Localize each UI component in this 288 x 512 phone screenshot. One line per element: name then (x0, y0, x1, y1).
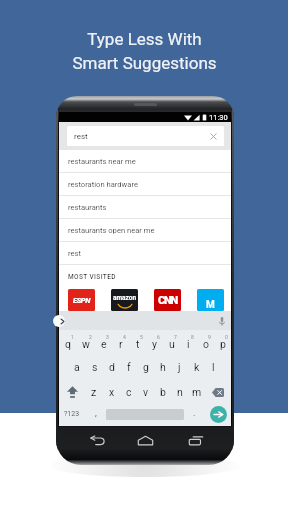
other: Clear (210, 133, 217, 140)
button[interactable]: 4 (112, 330, 129, 354)
staticText: x (109, 386, 115, 398)
button[interactable]: f (120, 354, 137, 378)
staticText: 8 (191, 334, 194, 340)
staticText: i (187, 338, 190, 350)
button[interactable]: . (184, 402, 205, 426)
button[interactable]: g (137, 354, 154, 378)
staticText: 3 (106, 334, 109, 340)
button[interactable]: s (86, 354, 103, 378)
button[interactable]: amazon (111, 289, 138, 311)
staticText: MOST VISITED (68, 273, 116, 281)
button[interactable]: Backspace (205, 378, 231, 402)
staticText: q (65, 338, 71, 350)
staticText: Type Less With (87, 29, 202, 49)
button[interactable]: M (197, 289, 224, 311)
staticText: d (109, 361, 115, 373)
button[interactable]: 0 (214, 330, 231, 354)
button[interactable]: Shift (59, 378, 85, 402)
button[interactable]: 1 (59, 330, 77, 354)
button[interactable]: Recents (186, 433, 206, 447)
staticText: j (178, 361, 181, 373)
staticText: f (127, 361, 131, 373)
staticText: r (119, 338, 123, 350)
button[interactable]: 8 (180, 330, 197, 354)
staticText: b (160, 386, 166, 398)
staticText: z (91, 386, 97, 398)
staticText: g (143, 361, 149, 373)
button[interactable]: restoration hardware (59, 173, 231, 195)
button[interactable]: n (171, 378, 188, 402)
staticText: M (206, 299, 215, 311)
staticText: s (92, 361, 98, 373)
button[interactable]: 9 (197, 330, 214, 354)
staticText: 6 (157, 334, 160, 340)
button[interactable]: d (103, 354, 120, 378)
button[interactable]: rest (67, 126, 224, 146)
button[interactable]: rest (59, 242, 231, 264)
button[interactable]: l (205, 354, 222, 378)
button[interactable]: Search (210, 406, 227, 423)
button[interactable]: Voice input (216, 315, 228, 327)
button[interactable]: CNN (154, 289, 181, 311)
button[interactable]: v (137, 378, 154, 402)
staticText: 1 (71, 334, 74, 340)
staticText: amazon (113, 294, 137, 302)
button[interactable]: x (103, 378, 120, 402)
button[interactable]: 7 (163, 330, 180, 354)
staticText: h (160, 361, 166, 373)
staticText: rest (74, 132, 88, 141)
staticText: restaurants open near me (68, 226, 155, 235)
staticText: y (152, 338, 157, 350)
staticText: a (74, 361, 80, 373)
staticText: Smart Suggestions (72, 53, 217, 73)
staticText: e (101, 338, 107, 350)
staticText: v (143, 386, 149, 398)
button[interactable]: , (85, 402, 106, 426)
staticText: u (169, 338, 175, 350)
staticText: n (177, 386, 183, 398)
button[interactable]: z (85, 378, 103, 402)
button[interactable]: h (154, 354, 171, 378)
staticText: 0 (225, 334, 228, 340)
button[interactable]: m (188, 378, 205, 402)
staticText: 2 (89, 334, 92, 340)
button[interactable]: ?123 (59, 402, 85, 426)
staticText: k (194, 361, 200, 373)
button[interactable]: ESPN (68, 289, 95, 311)
staticText: l (212, 361, 215, 373)
staticText: 5 (140, 334, 143, 340)
staticText: 7 (174, 334, 177, 340)
staticText: . (193, 408, 196, 419)
staticText: 4 (123, 334, 126, 340)
button[interactable]: 2 (77, 330, 95, 354)
button[interactable]: j (171, 354, 188, 378)
button[interactable]: restaurants (59, 196, 231, 218)
staticText: restaurants near me (68, 157, 136, 166)
staticText: t (136, 338, 140, 350)
staticText: w (82, 338, 90, 350)
staticText: , (95, 408, 97, 419)
button[interactable]: Home (135, 433, 155, 447)
button[interactable]: Expand suggestions (53, 315, 65, 327)
button[interactable]: restaurants near me (59, 150, 231, 172)
staticText: m (192, 386, 202, 398)
staticText: o (203, 338, 209, 350)
button[interactable]: b (154, 378, 171, 402)
staticText: restaurants (68, 203, 107, 212)
button[interactable]: 3 (95, 330, 112, 354)
staticText: 9 (208, 334, 211, 340)
staticText: rest (68, 249, 81, 258)
staticText: 11:30 (209, 113, 228, 122)
staticText: ?123 (64, 410, 80, 418)
button[interactable]: 6 (146, 330, 163, 354)
button[interactable]: restaurants open near me (59, 219, 231, 241)
button[interactable]: Back (87, 433, 107, 447)
button[interactable]: 5 (129, 330, 146, 354)
staticText: c (126, 386, 132, 398)
button[interactable]: a (68, 354, 86, 378)
button[interactable]: k (188, 354, 205, 378)
staticText: CNN (158, 294, 178, 307)
button[interactable]: c (120, 378, 137, 402)
staticText: p (220, 338, 226, 350)
